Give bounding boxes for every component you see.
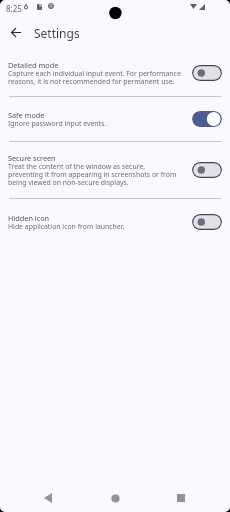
button[interactable]: Detailed mode [0,50,230,96]
staticText: Ignore password input events. [8,119,107,128]
button[interactable]: Recent apps [170,487,192,509]
staticText: Capture each individual input event. For… [8,69,181,86]
button[interactable]: Back [37,487,59,509]
staticText: Safe mode [8,110,45,120]
button[interactable]: Safe mode [0,97,230,141]
staticText: 8:25 [6,3,22,14]
button[interactable]: Home [104,487,126,509]
button[interactable]: On [192,111,222,127]
button[interactable]: Off [192,214,222,230]
staticText: Hide application icon from launcher. [8,222,125,231]
button[interactable]: Off [192,65,222,81]
button[interactable]: Secure screen [0,142,230,198]
staticText: Detailed mode [8,60,59,70]
staticText: Secure screen [8,153,56,163]
staticText: Treat the content of the window as secur… [8,162,177,187]
button[interactable]: Navigate up [5,21,27,43]
button[interactable]: Off [192,162,222,178]
staticText: Hidden icon [8,213,50,223]
button[interactable]: Hidden icon [0,199,230,245]
staticText: Settings [34,25,80,41]
